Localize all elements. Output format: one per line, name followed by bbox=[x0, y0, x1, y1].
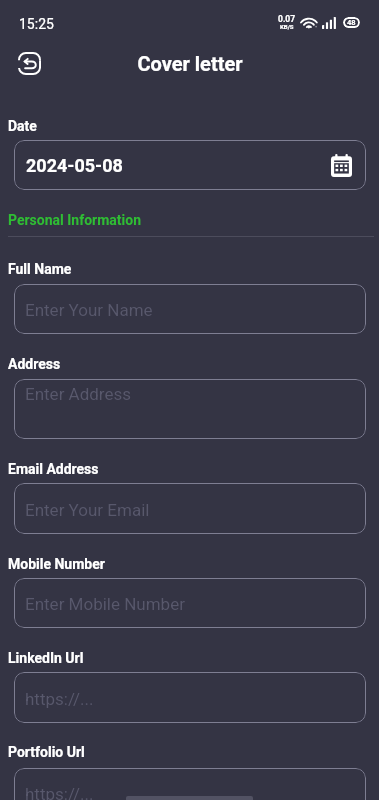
staticText: Date bbox=[8, 118, 37, 134]
staticText: Enter Mobile Number bbox=[25, 594, 185, 614]
button[interactable]: https://... bbox=[14, 672, 366, 723]
staticText: Cover letter bbox=[137, 52, 243, 75]
button[interactable]: https://... bbox=[14, 768, 366, 800]
staticText: https://... bbox=[25, 784, 94, 800]
staticText: Portfolio Url bbox=[8, 744, 85, 760]
staticText: KB/S bbox=[280, 23, 294, 30]
staticText: 48 bbox=[347, 18, 356, 27]
staticText: Enter Address bbox=[25, 384, 132, 404]
staticText: Address bbox=[8, 356, 61, 372]
staticText: Mobile Number bbox=[8, 556, 105, 572]
button[interactable]: Enter Your Name bbox=[14, 284, 366, 334]
staticText: Enter Your Name bbox=[25, 300, 153, 320]
staticText: https://... bbox=[25, 689, 94, 709]
staticText: Email Address bbox=[8, 461, 99, 477]
button[interactable]: Enter Mobile Number bbox=[14, 578, 366, 628]
button[interactable]: 2024-05-08 bbox=[14, 140, 366, 190]
button[interactable]: Back bbox=[18, 52, 41, 75]
staticText: 0.07 bbox=[278, 14, 296, 24]
staticText: Enter Your Email bbox=[25, 500, 150, 520]
staticText: 2024-05-08 bbox=[26, 155, 123, 176]
staticText: Personal Information bbox=[8, 212, 142, 228]
staticText: LinkedIn Url bbox=[8, 650, 84, 666]
staticText: Full Name bbox=[8, 261, 72, 277]
button[interactable]: Enter Address bbox=[14, 379, 366, 439]
staticText: 15:25 bbox=[19, 16, 54, 32]
button[interactable]: Enter Your Email bbox=[14, 483, 366, 534]
